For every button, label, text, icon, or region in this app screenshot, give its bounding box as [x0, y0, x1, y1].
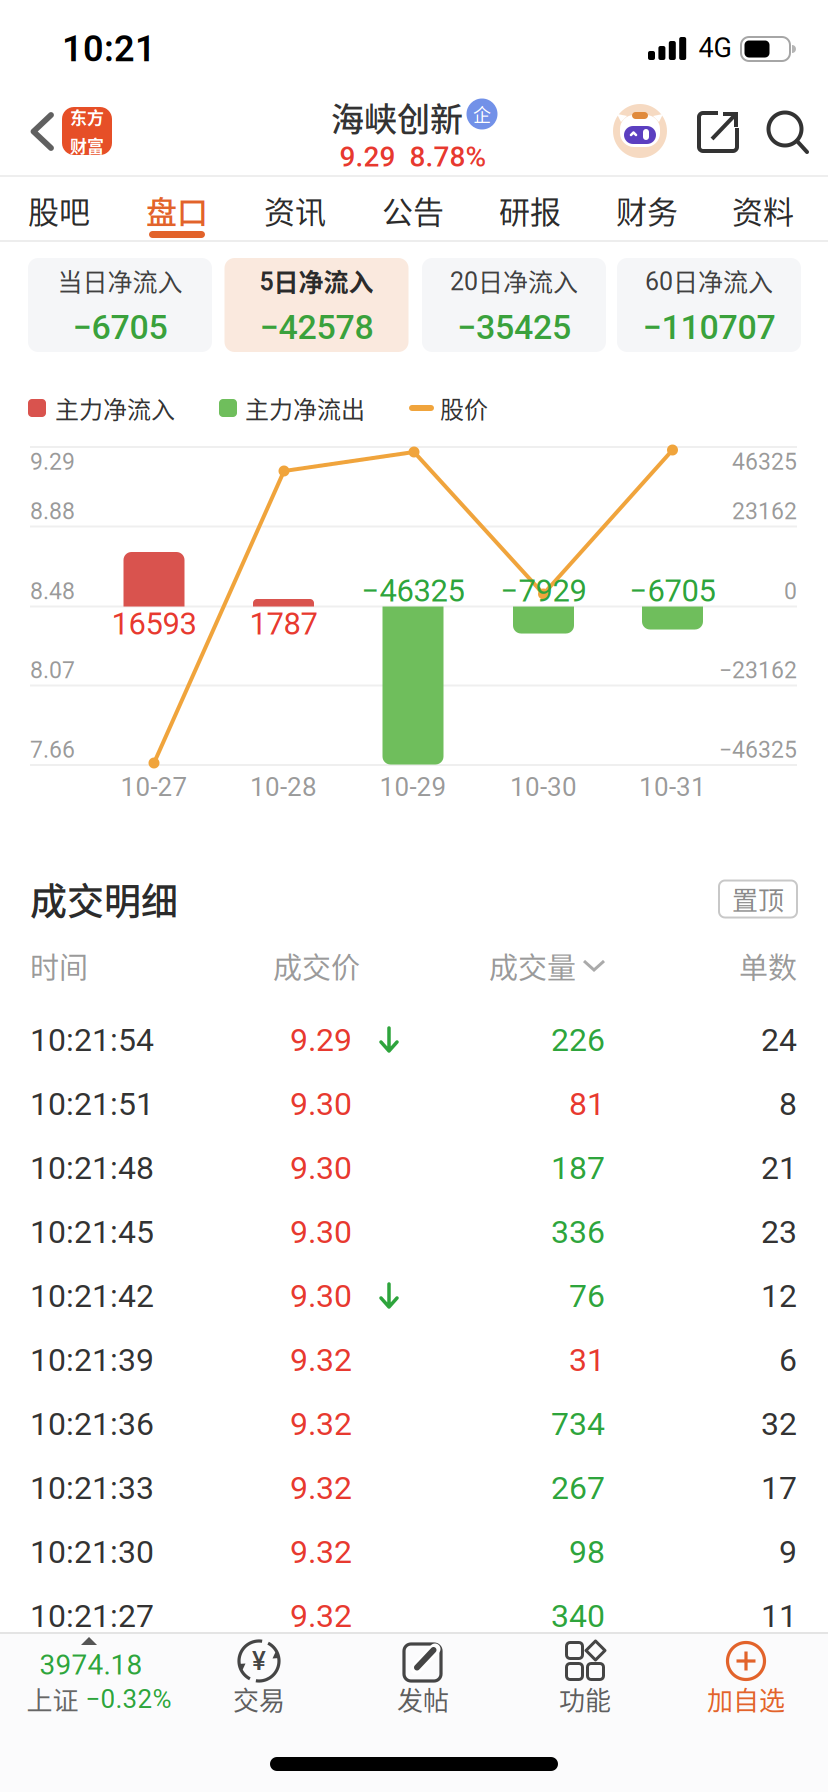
staticText: 置顶 [732, 878, 784, 920]
button[interactable]: 东方财富 [62, 107, 112, 155]
staticText: 10-31 [639, 770, 706, 804]
staticText: 9.29 [290, 1019, 352, 1061]
staticText: 17 [761, 1467, 797, 1509]
staticText: 81 [569, 1083, 605, 1125]
staticText: ¥ [252, 1644, 266, 1678]
staticText: 成交明细 [30, 869, 178, 929]
staticText: 3974.18 [39, 1647, 142, 1683]
button[interactable]: ¥ [199, 1633, 319, 1729]
staticText: 股价 [440, 388, 488, 427]
staticText: 上证 [26, 1678, 78, 1720]
button[interactable]: 5日净流入 [224, 258, 408, 352]
staticText: 盘口 [146, 185, 208, 235]
staticText: 股吧 [28, 185, 90, 235]
staticText: 资讯 [264, 185, 326, 235]
staticText: 31 [569, 1339, 605, 1381]
staticText: 9.29 [30, 447, 75, 477]
button[interactable]: 加自选 [686, 1633, 806, 1729]
staticText: 734 [551, 1403, 605, 1445]
staticText: 267 [551, 1467, 605, 1509]
staticText: −6705 [629, 571, 715, 611]
button[interactable]: 当日净流入 [28, 258, 212, 352]
staticText: 11 [761, 1595, 797, 1637]
staticText: 23 [761, 1211, 797, 1253]
button[interactable]: 研报 [480, 180, 580, 240]
button[interactable]: 搜索 [765, 109, 813, 157]
staticText: 98 [569, 1531, 605, 1573]
staticText: 32 [761, 1403, 797, 1445]
staticText: 340 [551, 1595, 605, 1637]
staticText: 12 [761, 1275, 797, 1317]
staticText: 10-29 [379, 770, 446, 804]
staticText: 企 [473, 99, 491, 129]
staticText: 东方 [70, 103, 104, 130]
staticText: 10:21:39 [30, 1339, 154, 1381]
staticText: 公告 [382, 185, 444, 235]
staticText: 主力净流出 [245, 388, 365, 427]
button[interactable]: 功能 [525, 1633, 645, 1729]
staticText: 研报 [499, 185, 561, 235]
button[interactable]: 盘口 [127, 180, 227, 240]
button[interactable]: 股吧 [9, 180, 109, 240]
staticText: 10:21:51 [30, 1083, 154, 1125]
staticText: 7.66 [30, 735, 75, 765]
staticText: 9.30 [290, 1147, 352, 1189]
staticText: 成交量 [489, 942, 576, 989]
staticText: 9.32 [290, 1403, 352, 1445]
staticText: 9.32 [290, 1531, 352, 1573]
button[interactable]: 财务 [597, 180, 697, 240]
button[interactable]: 20日净流入 [422, 258, 606, 352]
staticText: 8.07 [30, 655, 75, 686]
button[interactable]: 公告 [363, 180, 463, 240]
staticText: 9.30 [290, 1211, 352, 1253]
staticText: 1787 [249, 604, 317, 644]
staticText: 加自选 [707, 1678, 785, 1720]
staticText: 46325 [732, 447, 797, 477]
staticText: 5日净流入 [259, 260, 373, 301]
staticText: 76 [569, 1275, 605, 1317]
button[interactable]: 分享 [696, 110, 740, 154]
button[interactable]: 资料 [713, 180, 813, 240]
button[interactable]: 置顶 [719, 880, 797, 917]
staticText: 16593 [111, 604, 196, 644]
staticText: 9.30 [290, 1083, 352, 1125]
staticText: −7929 [500, 571, 586, 611]
button[interactable]: 消息 [613, 104, 667, 158]
button[interactable]: 成交量 [489, 942, 605, 989]
staticText: 财务 [616, 185, 678, 235]
staticText: 10-27 [120, 770, 187, 804]
staticText: 10:21:54 [30, 1019, 154, 1061]
staticText: 10:21:30 [30, 1531, 154, 1573]
button[interactable]: 返回 [10, 87, 70, 175]
staticText: 8 [779, 1083, 797, 1125]
button[interactable]: 60日净流入 [617, 258, 801, 352]
staticText: 336 [551, 1211, 605, 1253]
staticText: −6705 [72, 305, 167, 350]
staticText: 60日净流入 [645, 260, 773, 301]
staticText: 交易 [233, 1678, 285, 1720]
staticText: 发帖 [397, 1678, 449, 1720]
button[interactable]: 资讯 [245, 180, 345, 240]
button[interactable]: 3974.18 [2, 1633, 192, 1729]
staticText: 10:21:48 [30, 1147, 154, 1189]
staticText: 9.32 [290, 1467, 352, 1509]
staticText: −46325 [361, 571, 464, 611]
staticText: −35425 [457, 305, 571, 350]
staticText: 10:21:36 [30, 1403, 154, 1445]
staticText: 9 [779, 1531, 797, 1573]
staticText: 21 [761, 1147, 797, 1189]
staticText: −110707 [642, 305, 775, 350]
staticText: 10:21 [62, 25, 156, 73]
button[interactable]: 发帖 [363, 1633, 483, 1729]
staticText: 0 [784, 576, 797, 607]
staticText: 9.30 [290, 1275, 352, 1317]
staticText: 9.32 [290, 1595, 352, 1637]
staticText: 24 [761, 1019, 797, 1061]
staticText: 当日净流入 [57, 260, 182, 301]
staticText: 10:21:42 [30, 1275, 154, 1317]
staticText: 9.29 8.78% [339, 139, 486, 175]
staticText: 8.88 [30, 496, 75, 527]
staticText: 财富 [70, 131, 104, 159]
staticText: 功能 [559, 1678, 611, 1720]
staticText: 187 [551, 1147, 605, 1189]
